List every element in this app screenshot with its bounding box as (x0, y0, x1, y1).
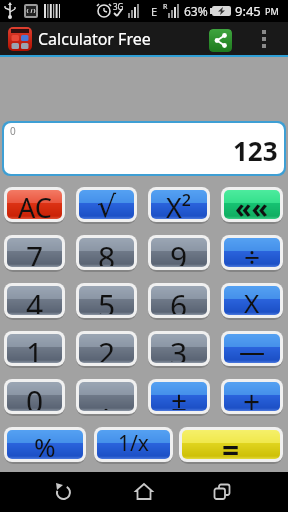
button[interactable]: ± (148, 379, 210, 414)
button[interactable] (262, 30, 266, 48)
button[interactable]: X² (148, 187, 210, 222)
button[interactable]: 8 (76, 235, 137, 270)
button[interactable]: 1 (4, 331, 65, 366)
staticText: 9 (170, 237, 188, 266)
button[interactable]: 5 (76, 283, 137, 318)
staticText: + (243, 381, 261, 410)
staticText: Calculator Free (38, 28, 151, 50)
staticText: 63% (184, 3, 208, 19)
button[interactable]: 2 (76, 331, 137, 366)
button[interactable]: √ (76, 187, 137, 222)
staticText: . (102, 381, 111, 410)
staticText: 1 (26, 333, 44, 362)
staticText: 4 (26, 285, 44, 314)
staticText: 0 (10, 124, 16, 138)
staticText: ± (171, 381, 188, 410)
button[interactable] (209, 29, 232, 52)
staticText: 6 (170, 285, 188, 314)
staticText: ÷ (244, 237, 261, 266)
staticText: 3G (113, 1, 124, 12)
staticText: X (244, 285, 260, 314)
button[interactable]: 7 (4, 235, 65, 270)
button[interactable]: — (221, 331, 283, 366)
staticText: √ (97, 189, 117, 218)
button[interactable]: 4 (4, 283, 65, 318)
staticText: AC (18, 189, 52, 218)
staticText: 2 (98, 333, 116, 362)
button[interactable]: + (221, 379, 283, 414)
staticText: — (239, 333, 266, 362)
button[interactable] (210, 480, 234, 504)
button[interactable]: ÷ (221, 235, 283, 270)
staticText: X² (166, 189, 192, 218)
button[interactable]: 9 (148, 235, 210, 270)
button[interactable] (52, 480, 76, 504)
staticText: PM (265, 5, 279, 17)
staticText: 1/x (118, 429, 149, 458)
button[interactable] (132, 480, 156, 504)
button[interactable]: «« (221, 187, 283, 222)
staticText: 123 (233, 133, 278, 168)
button[interactable]: 1/x (94, 427, 173, 462)
staticText: 7 (26, 237, 44, 266)
button[interactable]: 0 (4, 379, 65, 414)
button[interactable]: % (4, 427, 86, 462)
staticText: E (151, 4, 158, 19)
staticText: 8 (98, 237, 116, 266)
staticText: R (163, 2, 168, 12)
button[interactable]: 6 (148, 283, 210, 318)
button[interactable]: AC (4, 187, 65, 222)
staticText: 9:45 (235, 2, 265, 20)
staticText: 5 (98, 285, 116, 314)
staticText: «« (235, 189, 269, 218)
button[interactable]: 3 (148, 331, 210, 366)
staticText: 0 (26, 381, 44, 410)
staticText: % (34, 429, 56, 458)
staticText: 3 (170, 333, 188, 362)
button[interactable]: X (221, 283, 283, 318)
staticText: = (222, 429, 240, 458)
button[interactable]: = (179, 427, 283, 462)
button[interactable]: . (76, 379, 137, 414)
